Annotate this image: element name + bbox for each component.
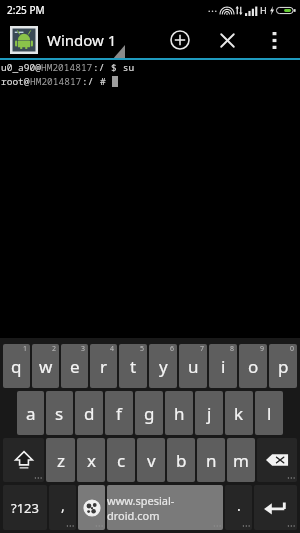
staticText: 7: [200, 344, 205, 354]
button[interactable]: Window 1: [47, 20, 125, 60]
staticText: v: [147, 449, 156, 472]
button[interactable]: Shift: [3, 438, 44, 482]
staticText: .: [237, 496, 241, 515]
button[interactable]: Close window: [212, 25, 242, 55]
button[interactable]: c: [107, 438, 135, 482]
button[interactable]: k: [225, 391, 253, 435]
staticText: a: [26, 402, 36, 425]
staticText: #: [100, 75, 112, 88]
button[interactable]: m: [227, 438, 255, 482]
staticText: m: [233, 449, 249, 472]
staticText: d: [84, 402, 95, 425]
staticText: 5: [140, 344, 145, 354]
staticText: h: [174, 402, 185, 425]
staticText: u: [188, 355, 199, 378]
button[interactable]: d: [75, 391, 103, 435]
staticText: p: [278, 355, 289, 378]
staticText: $: [111, 61, 117, 74]
button[interactable]: .: [225, 485, 252, 530]
staticText: o: [248, 355, 259, 378]
button[interactable]: e: [61, 344, 88, 388]
staticText: HM2014817: [30, 75, 82, 88]
button[interactable]: a: [17, 391, 44, 435]
staticText: :/: [82, 75, 100, 88]
button[interactable]: g: [135, 391, 163, 435]
staticText: s: [55, 402, 64, 425]
button[interactable]: r: [90, 344, 117, 388]
button[interactable]: x: [77, 438, 105, 482]
staticText: 4: [110, 344, 115, 354]
staticText: 2:25 PM: [7, 3, 45, 17]
button[interactable]: p: [269, 344, 297, 388]
button[interactable]: More options: [259, 25, 289, 55]
staticText: x: [87, 449, 96, 472]
staticText: z: [57, 449, 65, 472]
staticText: g: [144, 402, 155, 425]
staticText: l: [267, 402, 272, 425]
staticText: 8: [230, 344, 235, 354]
staticText: Window 1: [47, 30, 117, 50]
staticText: f: [116, 402, 122, 425]
button[interactable]: Terminal Emulator: [10, 26, 38, 54]
staticText: w: [39, 355, 53, 378]
staticText: :/: [93, 61, 111, 74]
staticText: su: [117, 61, 135, 74]
staticText: i: [221, 355, 226, 378]
button[interactable]: q: [3, 344, 30, 388]
staticText: 1: [23, 344, 28, 354]
staticText: b: [176, 449, 187, 472]
staticText: 0: [290, 344, 295, 354]
button[interactable]: s: [46, 391, 73, 435]
staticText: r: [100, 355, 108, 378]
staticText: q: [11, 355, 22, 378]
button[interactable]: Enter: [254, 485, 297, 530]
staticText: n: [206, 449, 217, 472]
button[interactable]: Change language: [78, 485, 105, 530]
button[interactable]: y: [149, 344, 177, 388]
staticText: H: [260, 4, 267, 16]
staticText: ,: [61, 496, 65, 515]
button[interactable]: Backspace: [257, 438, 297, 482]
button[interactable]: New window: [165, 25, 195, 55]
button[interactable]: o: [239, 344, 267, 388]
button[interactable]: f: [105, 391, 133, 435]
button[interactable]: z: [46, 438, 75, 482]
staticText: 6: [170, 344, 175, 354]
staticText: e: [70, 355, 80, 378]
staticText: j: [207, 402, 212, 425]
staticText: 2: [52, 344, 57, 354]
button[interactable]: h: [165, 391, 193, 435]
staticText: 9: [260, 344, 265, 354]
staticText: y: [159, 355, 168, 378]
staticText: root@: [1, 75, 30, 88]
staticText: u0_a90@: [1, 61, 41, 74]
button[interactable]: l: [255, 391, 283, 435]
button[interactable]: ?123: [3, 485, 47, 530]
button[interactable]: j: [195, 391, 223, 435]
staticText: 3: [81, 344, 86, 354]
button[interactable]: n: [197, 438, 225, 482]
button[interactable]: w: [32, 344, 59, 388]
staticText: c: [117, 449, 126, 472]
staticText: ?123: [11, 499, 39, 517]
staticText: t: [130, 355, 137, 378]
button[interactable]: Space: [107, 485, 223, 530]
button[interactable]: b: [167, 438, 195, 482]
staticText: www.spesial-droid.com: [107, 493, 223, 523]
button[interactable]: i: [209, 344, 237, 388]
button[interactable]: t: [119, 344, 147, 388]
staticText: HM2014817: [41, 61, 93, 74]
button[interactable]: v: [137, 438, 165, 482]
button[interactable]: ,: [49, 485, 76, 530]
button[interactable]: u: [179, 344, 207, 388]
staticText: k: [234, 402, 244, 425]
